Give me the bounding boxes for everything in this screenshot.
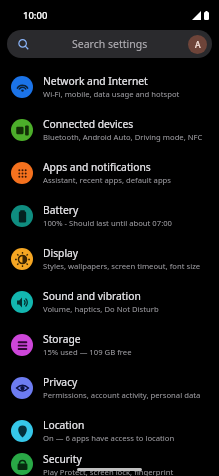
- button[interactable]: Account: [188, 35, 207, 54]
- button[interactable]: Display: [0, 237, 219, 280]
- staticText: Connected devices: [43, 117, 134, 131]
- staticText: 100% - Should last until about 07:00: [43, 218, 172, 228]
- staticText: A: [195, 39, 201, 51]
- staticText: Apps and notifications: [43, 160, 151, 174]
- staticText: Display: [43, 246, 79, 260]
- other: Search: [18, 39, 29, 50]
- button[interactable]: Battery: [0, 194, 219, 237]
- staticText: Battery: [43, 203, 79, 217]
- staticText: Wi-Fi, mobile, data usage and hotspot: [43, 89, 180, 99]
- staticText: Styles, wallpapers, screen timeout, font…: [43, 261, 201, 271]
- button[interactable]: Security: [0, 452, 219, 476]
- staticText: Location: [43, 418, 85, 432]
- staticText: Sound and vibration: [43, 289, 141, 303]
- button[interactable]: Sound and vibration: [0, 280, 219, 323]
- staticText: Bluetooth, Android Auto, Driving mode, N…: [43, 132, 203, 142]
- staticText: Volume, haptics, Do Not Disturb: [43, 304, 159, 314]
- staticText: Permissions, account activity, personal …: [43, 390, 201, 400]
- staticText: Security: [43, 452, 82, 466]
- staticText: Assistant, recent apps, default apps: [43, 175, 172, 185]
- staticText: On — 6 apps have access to location: [43, 433, 175, 443]
- button[interactable]: Storage: [0, 323, 219, 366]
- staticText: Network and Internet: [43, 74, 148, 88]
- staticText: Play Protect, screen lock, fingerprint: [43, 467, 174, 476]
- staticText: Search settings: [72, 37, 148, 51]
- staticText: Storage: [43, 332, 81, 346]
- button[interactable]: Search: [7, 30, 212, 58]
- staticText: Privacy: [43, 375, 78, 389]
- staticText: 10:00: [23, 9, 48, 22]
- staticText: 15% used — 109 GB free: [43, 347, 132, 357]
- button[interactable]: Apps and notifications: [0, 151, 219, 194]
- button[interactable]: Network and Internet: [0, 65, 219, 108]
- button[interactable]: Connected devices: [0, 108, 219, 151]
- button[interactable]: Location: [0, 409, 219, 452]
- button[interactable]: Privacy: [0, 366, 219, 409]
